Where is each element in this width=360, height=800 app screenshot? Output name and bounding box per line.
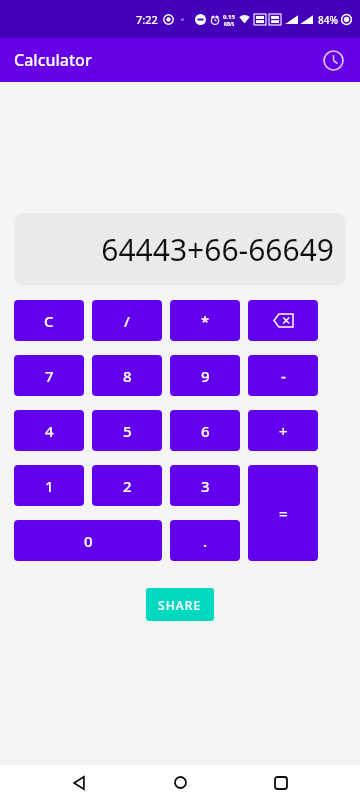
- button[interactable]: =: [248, 465, 318, 561]
- staticText: 6: [201, 421, 210, 441]
- button[interactable]: 64443+66-66649: [14, 213, 346, 285]
- button[interactable]: 3: [170, 465, 240, 506]
- button[interactable]: 6: [170, 410, 240, 451]
- button[interactable]: 9: [170, 355, 240, 396]
- button[interactable]: 4: [14, 410, 84, 451]
- button[interactable]: Home: [158, 765, 202, 800]
- staticText: 9: [201, 366, 210, 386]
- staticText: /: [124, 311, 130, 331]
- button[interactable]: Back: [57, 765, 101, 800]
- staticText: 8: [123, 366, 132, 386]
- staticText: 3: [201, 476, 210, 496]
- button[interactable]: Recents: [259, 765, 303, 800]
- staticText: 84%: [318, 13, 338, 27]
- staticText: 5: [123, 421, 132, 441]
- staticText: 1: [45, 476, 54, 496]
- button[interactable]: History: [317, 44, 349, 76]
- button[interactable]: 5: [92, 410, 162, 451]
- button[interactable]: 0: [14, 520, 162, 561]
- button[interactable]: .: [170, 520, 240, 561]
- staticText: 0.15: [223, 13, 235, 21]
- staticText: 4: [45, 421, 54, 441]
- button[interactable]: 8: [92, 355, 162, 396]
- staticText: C: [44, 311, 54, 331]
- button[interactable]: -: [248, 355, 318, 396]
- button[interactable]: 7: [14, 355, 84, 396]
- staticText: 2: [123, 476, 132, 496]
- staticText: -: [281, 366, 286, 386]
- button[interactable]: /: [92, 300, 162, 341]
- button[interactable]: C: [14, 300, 84, 341]
- button[interactable]: *: [170, 300, 240, 341]
- staticText: Calculator: [14, 49, 92, 71]
- staticText: 64443+66-66649: [101, 229, 334, 270]
- button[interactable]: +: [248, 410, 318, 451]
- staticText: KB/S: [224, 21, 235, 27]
- staticText: 0: [84, 531, 93, 551]
- staticText: .: [203, 531, 208, 551]
- staticText: 7: [45, 366, 54, 386]
- staticText: =: [279, 503, 288, 523]
- button[interactable]: Backspace: [248, 300, 318, 341]
- staticText: SHARE: [158, 597, 202, 613]
- staticText: 7:22: [136, 12, 158, 27]
- button[interactable]: 1: [14, 465, 84, 506]
- button[interactable]: 2: [92, 465, 162, 506]
- staticText: *: [201, 311, 210, 331]
- button[interactable]: SHARE: [146, 588, 214, 621]
- staticText: +: [279, 421, 288, 441]
